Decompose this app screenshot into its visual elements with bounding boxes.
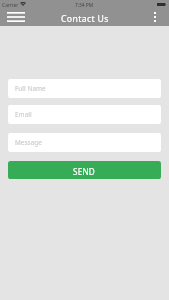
button[interactable]: Full Name xyxy=(8,79,161,98)
staticText: 7:34 PM xyxy=(75,2,94,9)
staticText: Email xyxy=(15,110,32,119)
staticText: Full Name xyxy=(15,84,46,93)
staticText: Contact Us xyxy=(61,13,109,25)
button[interactable]: Message xyxy=(8,133,161,152)
button[interactable]: Open navigation menu xyxy=(1,10,31,26)
staticText: Message xyxy=(15,138,42,147)
button[interactable]: SEND xyxy=(8,161,161,179)
staticText: Carrier xyxy=(2,2,19,9)
staticText: SEND xyxy=(73,166,96,177)
button[interactable]: Email xyxy=(8,105,161,124)
button[interactable]: More options xyxy=(147,10,169,26)
